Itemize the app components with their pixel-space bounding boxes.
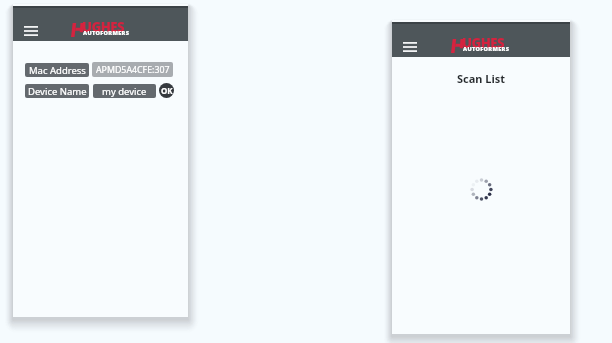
staticText: Scan List: [392, 71, 570, 86]
staticText: Device Name: [28, 85, 87, 98]
staticText: Mac Address: [29, 64, 86, 77]
button[interactable]: my device: [93, 84, 156, 98]
button[interactable]: APMD5A4CFE:307: [92, 62, 173, 77]
button[interactable]: OK: [159, 83, 174, 98]
staticText: OK: [161, 85, 173, 96]
button[interactable]: Open navigation menu: [21, 21, 41, 41]
staticText: UGHES: [82, 18, 124, 32]
staticText: AUTOFORMERS: [463, 45, 510, 53]
staticText: UGHES: [462, 34, 504, 48]
button[interactable]: Device Name: [25, 84, 89, 98]
staticText: APMD5A4CFE:307: [96, 64, 170, 76]
button[interactable]: Mac Address: [25, 63, 89, 77]
button[interactable]: Open navigation menu: [400, 37, 420, 57]
staticText: my device: [102, 85, 147, 98]
staticText: AUTOFORMERS: [83, 29, 130, 37]
